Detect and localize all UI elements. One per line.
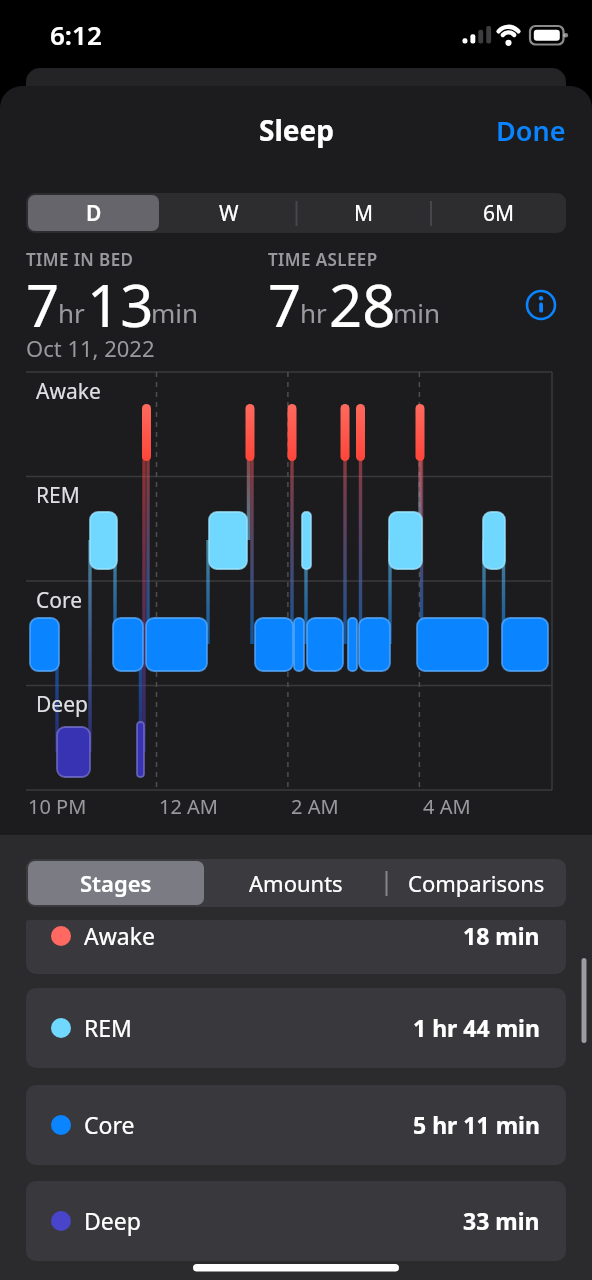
button[interactable]: Stages [28, 861, 204, 905]
staticText: 2 AM [291, 793, 339, 820]
staticText: 18 min [463, 920, 540, 951]
button[interactable]: 6M [431, 193, 566, 233]
button[interactable]: Awake [26, 920, 566, 974]
staticText: 28 [329, 265, 396, 344]
staticText: Awake [84, 920, 155, 951]
staticText: 10 PM [28, 793, 87, 820]
button[interactable]: W [161, 193, 296, 233]
staticText: 7 [26, 265, 60, 344]
button[interactable]: Amounts [206, 859, 386, 907]
staticText: Deep [84, 1205, 141, 1236]
button[interactable] [524, 288, 558, 322]
staticText: Sleep [259, 111, 334, 149]
staticText: REM [36, 481, 80, 510]
staticText: Core [84, 1109, 135, 1140]
staticText: 7 [268, 265, 302, 344]
staticText: 33 min [463, 1205, 540, 1236]
button[interactable]: D [28, 195, 159, 231]
staticText: W [219, 199, 239, 228]
button[interactable]: Core [26, 1085, 566, 1165]
staticText: 6:12 [50, 17, 102, 52]
staticText: Stages [80, 868, 152, 898]
button[interactable]: Deep [26, 1181, 566, 1261]
button[interactable]: M [296, 193, 431, 233]
staticText: min [151, 295, 199, 330]
staticText: 6M [483, 199, 515, 228]
staticText: 13 [87, 265, 154, 344]
staticText: Core [36, 586, 83, 615]
staticText: TIME ASLEEP [268, 248, 378, 271]
staticText: 12 AM [159, 793, 218, 820]
staticText: hr [58, 295, 85, 330]
staticText: hr [300, 295, 327, 330]
staticText: REM [84, 1012, 132, 1043]
staticText: min [393, 295, 441, 330]
staticText: D [86, 199, 102, 228]
staticText: 1 hr 44 min [413, 1012, 540, 1043]
staticText: TIME IN BED [26, 248, 134, 271]
staticText: Comparisons [408, 868, 545, 898]
staticText: 4 AM [423, 793, 471, 820]
button[interactable]: Comparisons [386, 859, 566, 907]
staticText: M [354, 199, 374, 228]
staticText: Oct 11, 2022 [26, 333, 155, 363]
staticText: Deep [36, 690, 88, 719]
button[interactable]: Done [496, 112, 566, 149]
staticText: Awake [36, 377, 101, 406]
button[interactable]: REM [26, 988, 566, 1068]
staticText: 5 hr 11 min [413, 1109, 540, 1140]
staticText: Amounts [249, 868, 343, 898]
